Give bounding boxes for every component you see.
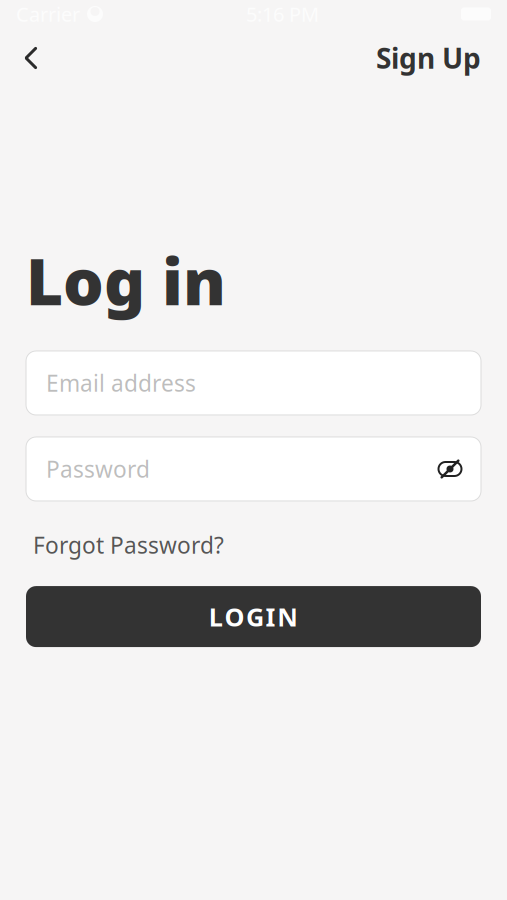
button[interactable]: Back (9, 36, 53, 80)
staticText: Sign Up (376, 39, 481, 77)
staticText: Forgot Password? (33, 530, 224, 560)
button[interactable]: Show password (433, 452, 467, 486)
staticText: Log in (26, 238, 226, 323)
button[interactable]: Forgot Password? (33, 530, 224, 560)
staticText: LOGIN (209, 600, 298, 633)
staticText: Password (46, 454, 150, 484)
button[interactable]: Sign Up (370, 36, 487, 80)
staticText: Email address (46, 368, 196, 398)
button[interactable]: LOGIN (26, 586, 481, 647)
